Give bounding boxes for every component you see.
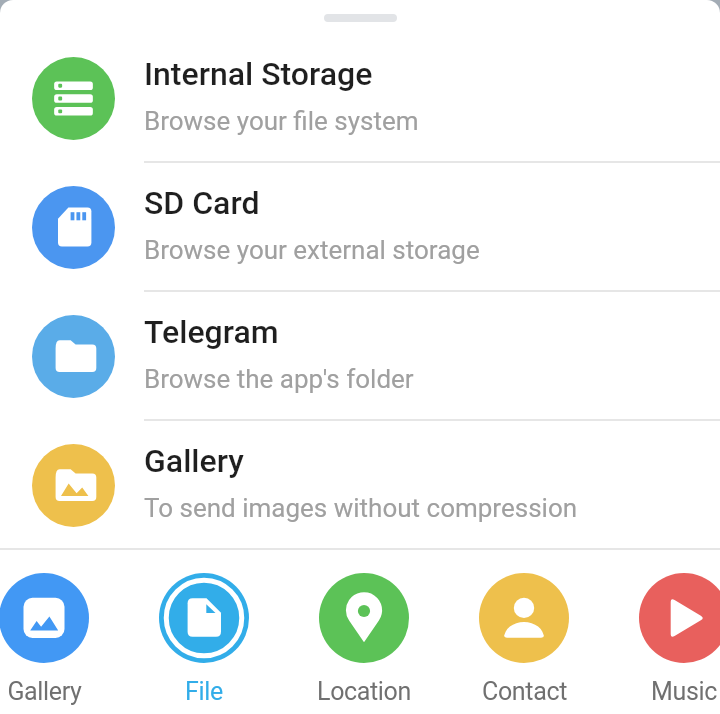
button[interactable]: Music bbox=[604, 549, 720, 714]
button[interactable]: Internal Storage bbox=[0, 32, 720, 161]
staticText: File bbox=[185, 677, 223, 706]
staticText: Browse your file system bbox=[144, 106, 419, 136]
staticText: Music bbox=[651, 677, 717, 706]
button[interactable]: Contact bbox=[444, 549, 604, 714]
button[interactable]: File bbox=[124, 549, 284, 714]
staticText: Contact bbox=[482, 677, 567, 706]
button[interactable]: SD Card bbox=[0, 161, 720, 290]
staticText: Internal Storage bbox=[144, 55, 373, 93]
staticText: Browse your external storage bbox=[144, 235, 480, 265]
staticText: Browse the app's folder bbox=[144, 364, 414, 394]
staticText: To send images without compression bbox=[144, 493, 578, 523]
staticText: Location bbox=[317, 677, 411, 706]
staticText: Gallery bbox=[7, 677, 82, 706]
button[interactable]: Gallery bbox=[0, 549, 124, 714]
button[interactable]: Gallery bbox=[0, 419, 720, 548]
staticText: SD Card bbox=[144, 184, 260, 222]
staticText: Telegram bbox=[144, 313, 279, 351]
staticText: Gallery bbox=[144, 442, 244, 480]
button[interactable]: Location bbox=[284, 549, 444, 714]
button[interactable]: Telegram bbox=[0, 290, 720, 419]
